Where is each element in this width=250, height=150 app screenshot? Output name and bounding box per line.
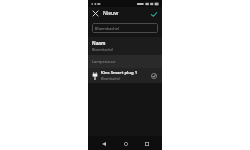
button[interactable]: Close: [91, 9, 100, 18]
staticText: Bloemkachel: [95, 26, 120, 31]
staticText: Bloemkachel: [92, 47, 114, 52]
button[interactable]: Home: [120, 138, 131, 149]
staticText: Naam: [92, 40, 106, 46]
button[interactable]: Kies Smart plug 1: [88, 68, 162, 83]
staticText: Kies Smart plug 1: [101, 70, 138, 76]
button[interactable]: Back: [98, 138, 109, 149]
button[interactable]: Naam: [88, 37, 162, 55]
button[interactable]: Save: [149, 9, 159, 19]
staticText: Nieuw: [103, 10, 119, 17]
staticText: Bloemkachel: [101, 77, 121, 81]
button[interactable]: Recents: [141, 138, 152, 149]
button[interactable]: Select device: [150, 72, 158, 80]
staticText: Lampenzuur: [92, 59, 116, 64]
button[interactable]: Bloemkachel: [92, 23, 158, 33]
